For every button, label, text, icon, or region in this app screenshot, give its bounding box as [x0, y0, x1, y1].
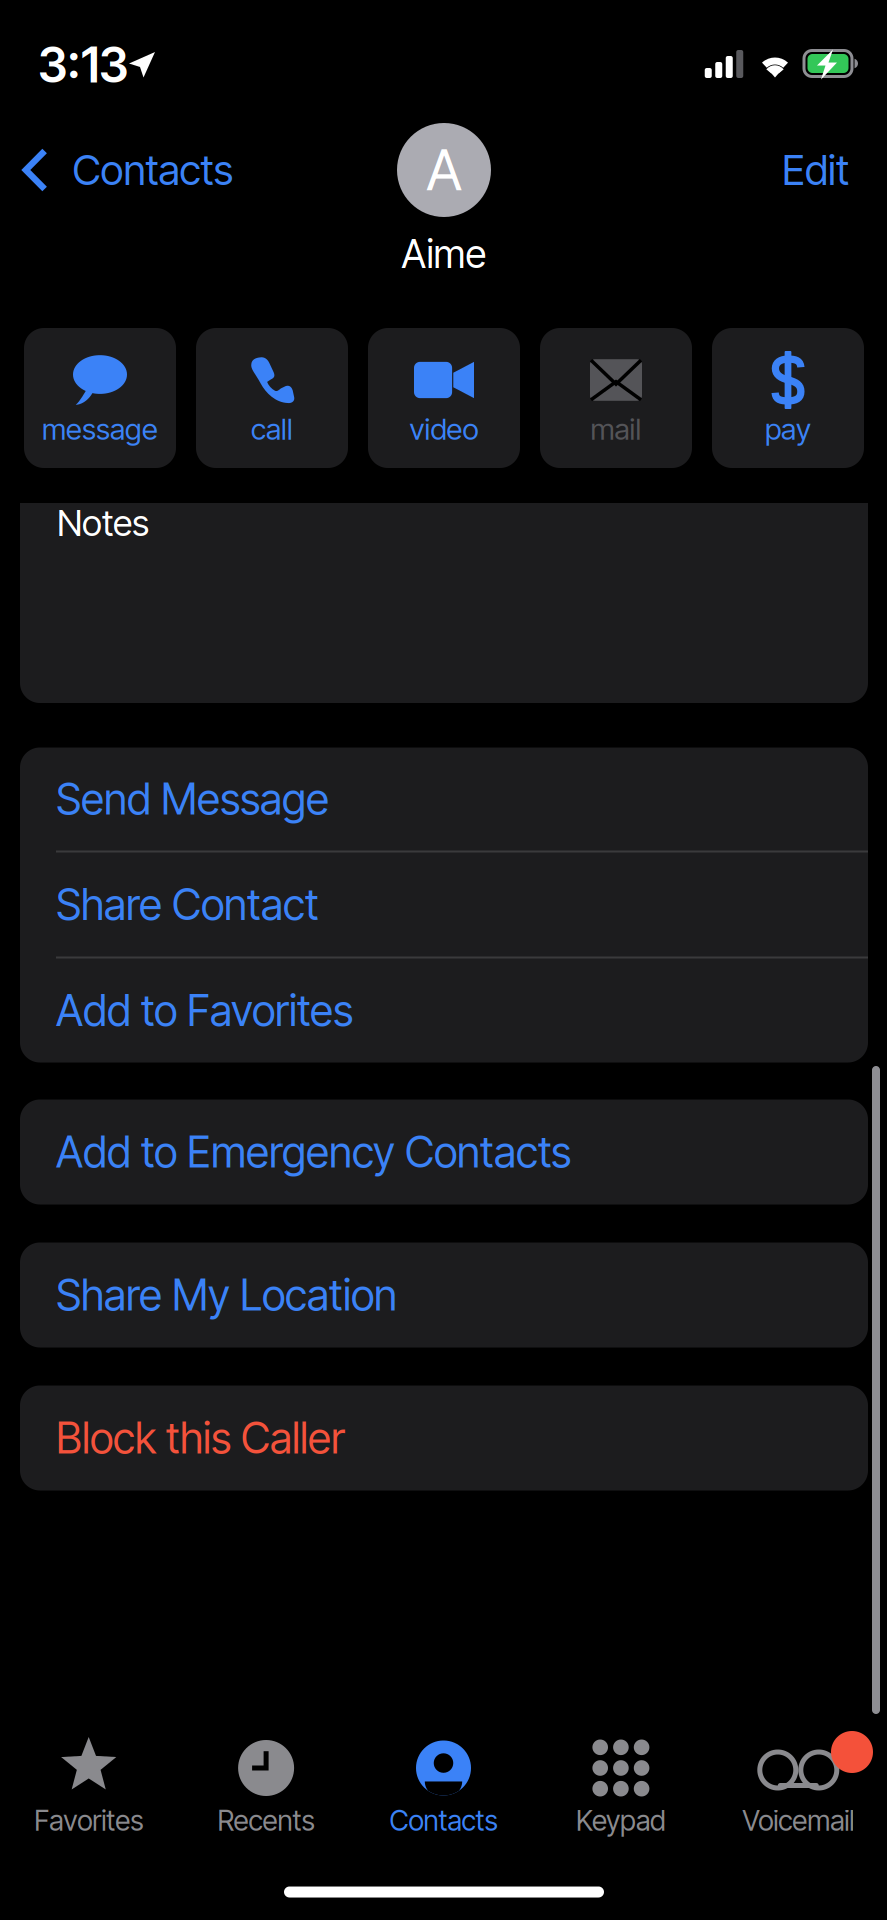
staticText: call [251, 411, 293, 447]
button[interactable]: Keypad [532, 1722, 710, 1842]
staticText: message [42, 411, 158, 447]
staticText: pay [765, 411, 811, 447]
staticText: video [409, 411, 478, 447]
button[interactable]: mail [540, 328, 692, 468]
staticText: Favorites [34, 1804, 143, 1837]
button[interactable]: Voicemail [710, 1722, 887, 1842]
staticText: A [426, 136, 461, 204]
staticText: Add to Emergency Contacts [56, 1126, 571, 1178]
button[interactable]: call [196, 328, 348, 468]
button[interactable]: pay [712, 328, 864, 468]
staticText: Recents [218, 1804, 315, 1837]
button[interactable]: Edit [719, 138, 849, 202]
button[interactable]: Share My Location [20, 1242, 868, 1347]
staticText: Aime [401, 231, 486, 277]
staticText: Block this Caller [56, 1412, 345, 1464]
staticText: Add to Favorites [56, 985, 353, 1036]
button[interactable]: message [24, 328, 176, 468]
button[interactable]: Add to Emergency Contacts [20, 1099, 868, 1204]
staticText: mail [590, 411, 641, 447]
button[interactable]: Add to Favorites [20, 958, 868, 1062]
staticText: Edit [782, 145, 849, 195]
button[interactable]: Block this Caller [20, 1385, 868, 1490]
staticText: Voicemail [742, 1804, 854, 1837]
staticText: Contacts [389, 1804, 497, 1837]
staticText: Contacts [73, 145, 234, 195]
button[interactable]: Favorites [0, 1722, 177, 1842]
button[interactable]: Contacts [23, 138, 263, 202]
button[interactable]: video [368, 328, 520, 468]
button[interactable]: Recents [177, 1722, 355, 1842]
staticText: 3:13 [38, 36, 128, 94]
staticText: Send Message [56, 773, 329, 825]
staticText: Notes [57, 501, 149, 545]
button[interactable]: Contacts [355, 1722, 532, 1842]
staticText: Keypad [576, 1804, 666, 1837]
button[interactable]: Send Message [20, 747, 868, 850]
staticText: Share Contact [56, 879, 319, 930]
button[interactable]: Share Contact [20, 852, 868, 956]
staticText: Share My Location [56, 1269, 397, 1321]
